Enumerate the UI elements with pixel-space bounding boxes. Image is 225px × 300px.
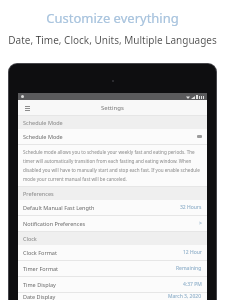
staticText: Date Display	[23, 293, 56, 300]
staticText: Default Manual Fast Length	[23, 204, 95, 211]
staticText: 4:37 PM	[183, 281, 202, 288]
button[interactable]: Time Display	[18, 277, 207, 292]
staticText: >	[199, 220, 202, 227]
button[interactable]: Schedule Mode	[18, 129, 207, 144]
button[interactable]: Open navigation menu	[21, 102, 33, 114]
button[interactable]: Date Display	[18, 293, 207, 300]
button[interactable]: Default Manual Fast Length	[18, 200, 207, 215]
button[interactable]: Timer Format	[18, 261, 207, 276]
staticText: Schedule Mode	[23, 133, 63, 140]
staticText: Time Display	[23, 281, 56, 288]
staticText: Clock	[23, 235, 37, 242]
staticText: Timer Format	[23, 265, 59, 272]
staticText: 12 Hour	[183, 249, 202, 256]
staticText: Notification Preferences	[23, 220, 86, 227]
staticText: Remaining	[176, 265, 202, 272]
button[interactable]: Clock Format	[18, 245, 207, 260]
staticText: Schedule Mode	[23, 119, 63, 126]
staticText: Settings	[101, 104, 124, 112]
staticText: Clock Format	[23, 249, 57, 256]
staticText: Schedule mode allows you to schedule you…	[23, 149, 202, 182]
staticText: Preferences	[23, 190, 54, 197]
staticText: Date, Time, Clock, Units, Multiple Langu…	[8, 33, 217, 47]
staticText: 32 Hours	[180, 204, 202, 211]
staticText: Customize everything	[46, 9, 179, 27]
button[interactable]: Notification Preferences	[18, 216, 207, 231]
staticText: March 3, 2020	[168, 293, 202, 300]
